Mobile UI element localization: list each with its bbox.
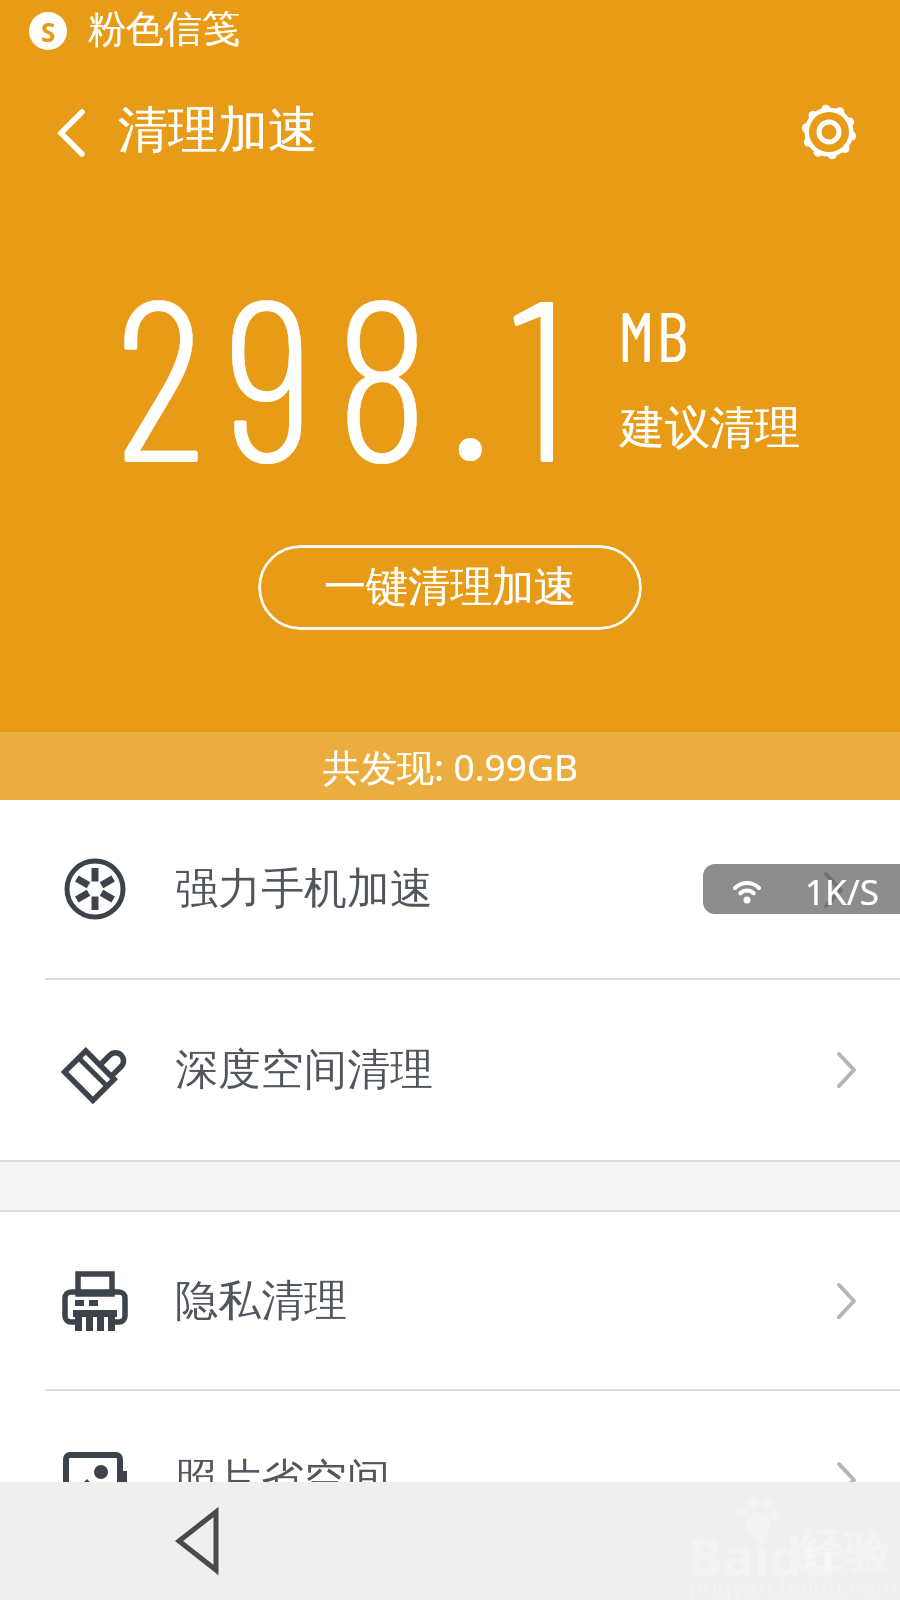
button[interactable]: 一键清理加速: [258, 545, 642, 630]
button[interactable]: [57, 110, 85, 156]
staticText: MB: [618, 292, 690, 376]
staticText: 清理加速: [118, 99, 318, 162]
button[interactable]: 隐私清理: [0, 1212, 900, 1389]
staticText: 建议清理: [620, 400, 800, 457]
button[interactable]: 深度空间清理: [0, 980, 900, 1160]
staticText: 隐私清理: [175, 1274, 347, 1328]
staticText: 强力手机加速: [175, 862, 433, 916]
button[interactable]: 1K/S: [703, 864, 900, 914]
button[interactable]: [800, 103, 858, 161]
staticText: 深度空间清理: [175, 1043, 433, 1097]
staticText: 1K/S: [805, 868, 879, 914]
staticText: 298.1: [115, 234, 588, 508]
staticText: S: [41, 14, 56, 49]
staticText: 粉色信笺: [88, 5, 240, 53]
staticText: 共发现: 0.99GB: [323, 741, 578, 792]
staticText: 一键清理加速: [324, 561, 576, 614]
button[interactable]: [172, 1508, 220, 1574]
button[interactable]: 照片省空间: [0, 1391, 900, 1569]
button[interactable]: 强力手机加速: [0, 800, 900, 978]
staticText: 照片省空间: [175, 1453, 390, 1507]
